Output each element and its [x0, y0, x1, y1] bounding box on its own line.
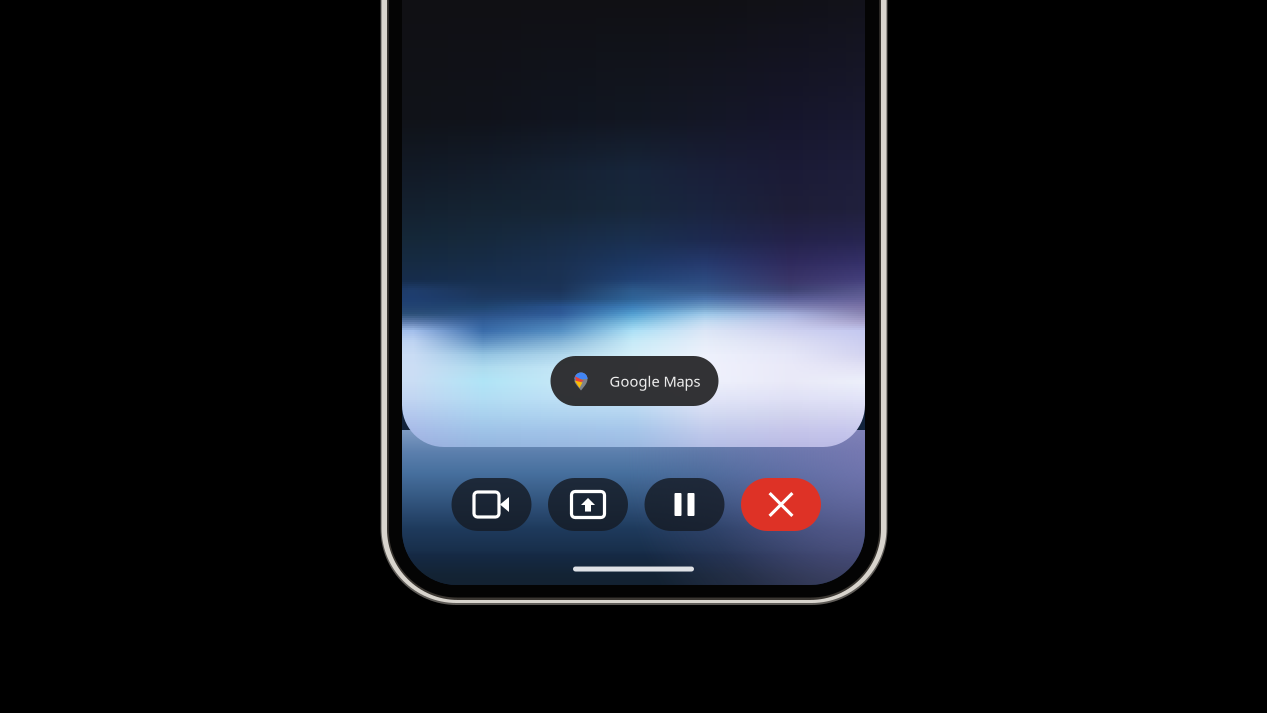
- button[interactable]: End Call: [741, 478, 821, 531]
- button[interactable]: Share Screen: [548, 478, 628, 531]
- button[interactable]: Google Maps: [550, 356, 718, 406]
- staticText: Google Maps: [609, 371, 700, 391]
- button[interactable]: Pause: [644, 478, 724, 531]
- button[interactable]: Camera: [451, 478, 531, 531]
